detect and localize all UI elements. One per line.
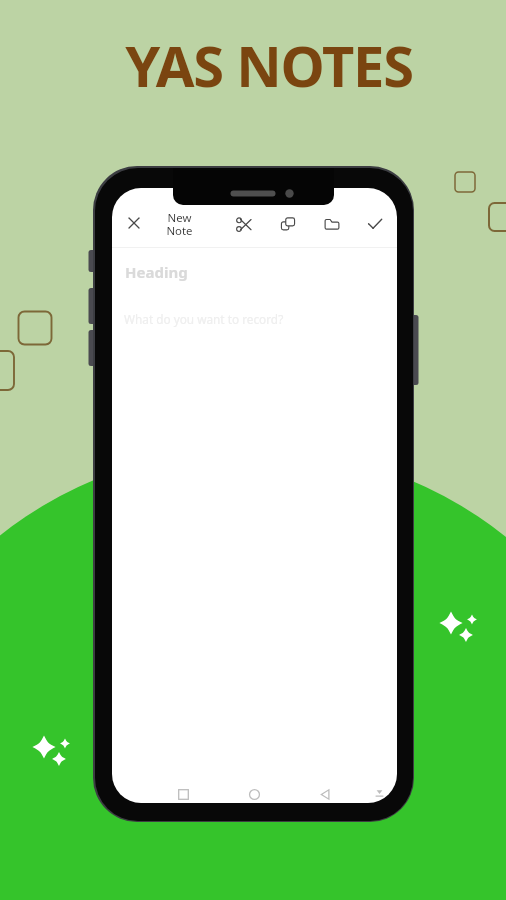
button[interactable]: Done: [359, 208, 391, 240]
button[interactable]: Cut: [228, 208, 260, 240]
staticText: What do you want to record?: [124, 311, 284, 327]
button[interactable]: Recent apps: [169, 786, 197, 803]
staticText: Heading: [125, 262, 188, 282]
button[interactable]: Close: [120, 209, 148, 237]
button[interactable]: Home: [240, 786, 268, 803]
staticText: New Note: [166, 210, 193, 239]
button[interactable]: New Note: [161, 207, 197, 241]
staticText: YAS NOTES: [125, 27, 413, 103]
button[interactable]: Back: [311, 786, 339, 803]
button[interactable]: Copy: [272, 208, 304, 240]
button[interactable]: Folder: [316, 208, 348, 240]
button[interactable]: Hide keyboard: [365, 786, 393, 803]
